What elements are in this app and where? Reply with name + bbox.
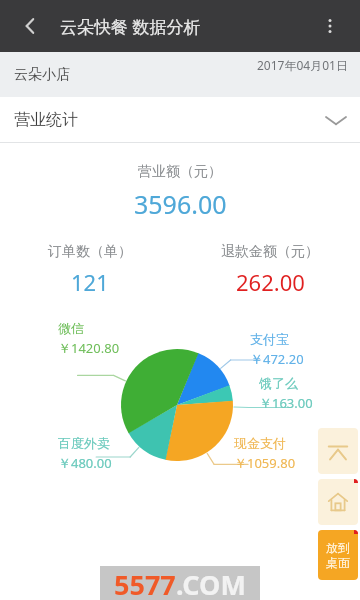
staticText: ￥1420.80 — [58, 339, 120, 357]
staticText: ￥163.00 — [259, 394, 313, 412]
staticText: 云朵小店 — [14, 66, 70, 84]
staticText: 微信 — [58, 320, 84, 336]
staticText: 退款金额（元） — [221, 243, 319, 261]
staticText: ￥480.00 — [58, 454, 112, 472]
button[interactable]: 首页 — [318, 479, 358, 525]
staticText: 云朵快餐 数据分析 — [60, 15, 201, 38]
staticText: 营业额（元） — [138, 163, 222, 181]
staticText: 现金支付 — [234, 435, 286, 451]
staticText: 桌面 — [326, 555, 350, 570]
staticText: 262.00 — [236, 267, 305, 297]
staticText: 百度外卖 — [58, 435, 110, 451]
staticText: 2017年04月01日 — [257, 57, 348, 73]
staticText: 订单数（单） — [48, 243, 132, 261]
button[interactable]: 营业统计 — [0, 97, 360, 142]
button[interactable]: 放到 — [318, 530, 358, 580]
button[interactable]: 云朵小店 — [0, 52, 360, 97]
staticText: 支付宝 — [250, 331, 289, 347]
staticText: 121 — [71, 267, 109, 297]
staticText: .COM — [176, 566, 246, 600]
button[interactable]: 更多选项 — [312, 8, 348, 44]
button[interactable]: 返回 — [14, 9, 48, 43]
staticText: ￥472.20 — [250, 350, 304, 368]
staticText: ￥1059.80 — [234, 454, 296, 472]
staticText: 放到 — [326, 540, 350, 555]
staticText: 饿了么 — [259, 375, 298, 391]
staticText: 5577 — [114, 566, 176, 600]
button[interactable]: 回到顶部 — [318, 428, 358, 474]
staticText: 营业统计 — [14, 110, 78, 130]
staticText: 3596.00 — [134, 187, 227, 221]
